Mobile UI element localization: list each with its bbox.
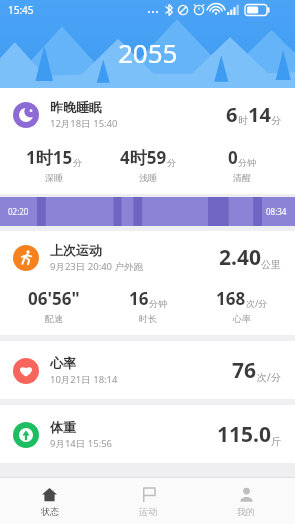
staticText: 分 [271,114,281,127]
staticText: 0 [228,146,238,169]
staticText: 4时59 [120,146,167,169]
staticText: 分钟 [149,298,167,309]
staticText: 9月23日 20:40 户外跑 [50,260,144,273]
staticText: 16 [129,287,149,310]
staticText: 分钟 [238,157,256,168]
staticText: 体重 [50,419,76,435]
staticText: 运动 [139,506,157,517]
other: 运动 [140,486,157,503]
staticText: 浅睡 [139,172,157,183]
staticText: 斤 [271,435,281,448]
staticText: 深睡 [45,172,63,183]
staticText: 心率 [233,313,251,324]
staticText: 心率 [50,355,76,371]
staticText: 02:20 [8,206,29,217]
staticText: 76 [232,356,257,385]
staticText: 12月18日 15:40 [50,117,118,130]
staticText: 上次运动 [50,242,102,258]
staticText: 08:34 [266,206,287,217]
staticText: 配速 [45,313,63,324]
staticText: 14 [248,101,271,128]
staticText: 2055 [118,35,178,70]
staticText: 9月14日 15:56 [50,437,113,450]
button[interactable]: 心率 [0,341,295,399]
staticText: 2.40 [219,243,261,272]
staticText: 15:45 [8,3,34,17]
staticText: 次/分 [246,297,268,309]
staticText: 6 [226,101,238,128]
staticText: 清醒 [233,172,251,183]
staticText: 时长 [139,313,157,324]
staticText: 分 [73,157,82,168]
staticText: 状态 [41,506,59,517]
button[interactable]: 02:20 [0,197,295,226]
other: 我的 [238,486,255,503]
button[interactable]: 运动 [99,478,197,524]
staticText: 10月21日 18:14 [50,373,118,386]
staticText: 公里 [261,258,281,271]
other: 状态 [41,486,58,503]
button[interactable]: 体重 [0,405,295,463]
staticText: 168 [216,287,246,310]
button[interactable]: 昨晚睡眠 [0,88,295,194]
button[interactable]: 我的 [197,478,295,524]
staticText: 我的 [237,506,255,517]
button[interactable]: 状态 [0,478,99,524]
staticText: 昨晚睡眠 [50,99,102,115]
staticText: 时 [238,114,248,127]
staticText: 1时15 [26,146,73,169]
staticText: 分 [167,157,176,168]
staticText: 06'56" [28,287,80,310]
button[interactable]: 上次运动 [0,231,295,335]
staticText: 115.0 [217,420,271,449]
staticText: 次/分 [257,370,281,384]
